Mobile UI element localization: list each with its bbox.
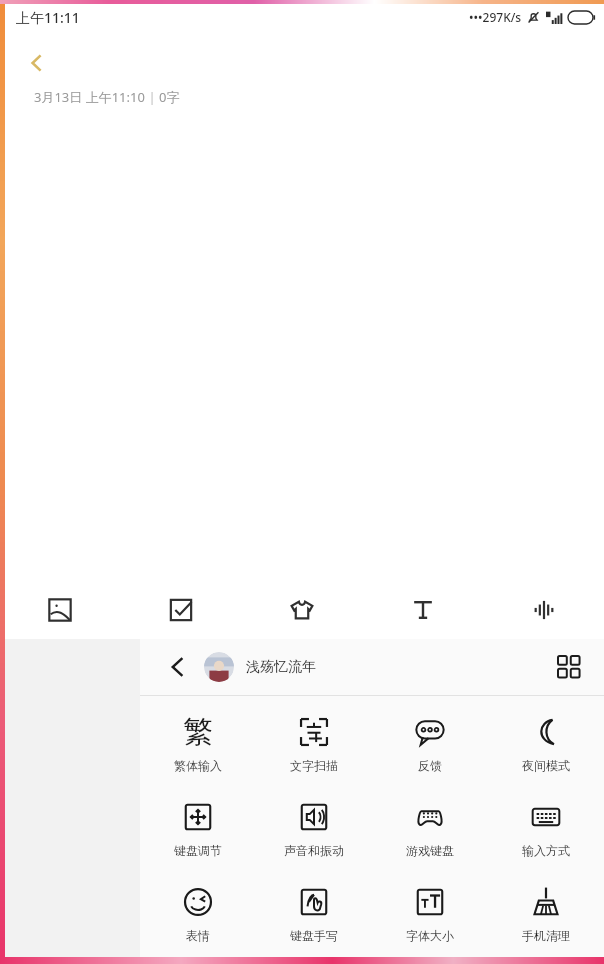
staticText: 3月13日 上午11:10 — [34, 88, 145, 106]
button[interactable]: 夜间模式 — [488, 704, 604, 789]
button[interactable]: 表情 — [140, 874, 256, 959]
button[interactable]: Checklist — [120, 581, 241, 639]
staticText: 繁体输入 — [174, 758, 222, 773]
button[interactable]: 输入方式 — [488, 789, 604, 874]
staticText: 繁 — [183, 713, 213, 751]
staticText: 夜间模式 — [522, 758, 570, 773]
button[interactable]: 繁 — [140, 704, 256, 789]
staticText: 浅殇忆流年 — [246, 658, 316, 676]
button[interactable]: Back — [14, 40, 60, 86]
staticText: •••297K/s — [469, 9, 522, 25]
button[interactable]: 字体大小 — [372, 874, 488, 959]
staticText: 键盘调节 — [174, 843, 222, 858]
staticText: 字体大小 — [406, 928, 454, 943]
staticText: 输入方式 — [522, 843, 570, 858]
staticText: 反馈 — [418, 758, 442, 773]
staticText: | — [145, 88, 159, 106]
button[interactable] — [204, 652, 234, 682]
staticText: 游戏键盘 — [406, 843, 454, 858]
staticText: 上午11:11 — [16, 8, 80, 27]
button[interactable]: 手机清理 — [488, 874, 604, 959]
button[interactable]: 反馈 — [372, 704, 488, 789]
staticText: 键盘手写 — [290, 928, 338, 943]
button[interactable]: Text format — [362, 581, 483, 639]
button[interactable]: Style — [241, 581, 362, 639]
button[interactable]: Back — [158, 647, 198, 687]
button[interactable]: 文字扫描 — [256, 704, 372, 789]
button[interactable]: 键盘手写 — [256, 874, 372, 959]
staticText: 文字扫描 — [290, 758, 338, 773]
button[interactable]: Insert image — [0, 581, 120, 639]
button[interactable]: 游戏键盘 — [372, 789, 488, 874]
button[interactable]: Grid menu — [548, 646, 590, 688]
staticText: 声音和振动 — [284, 843, 344, 858]
staticText: 表情 — [186, 928, 210, 943]
button[interactable]: Voice — [483, 581, 604, 639]
staticText: 0字 — [159, 88, 180, 106]
button[interactable]: 声音和振动 — [256, 789, 372, 874]
button[interactable]: 键盘调节 — [140, 789, 256, 874]
staticText: 手机清理 — [522, 928, 570, 943]
